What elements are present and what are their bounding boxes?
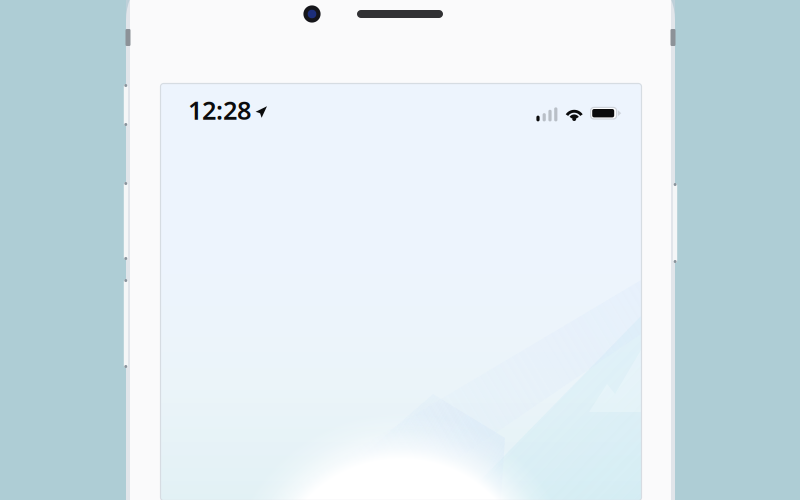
staticText: 12:28 bbox=[188, 93, 251, 127]
